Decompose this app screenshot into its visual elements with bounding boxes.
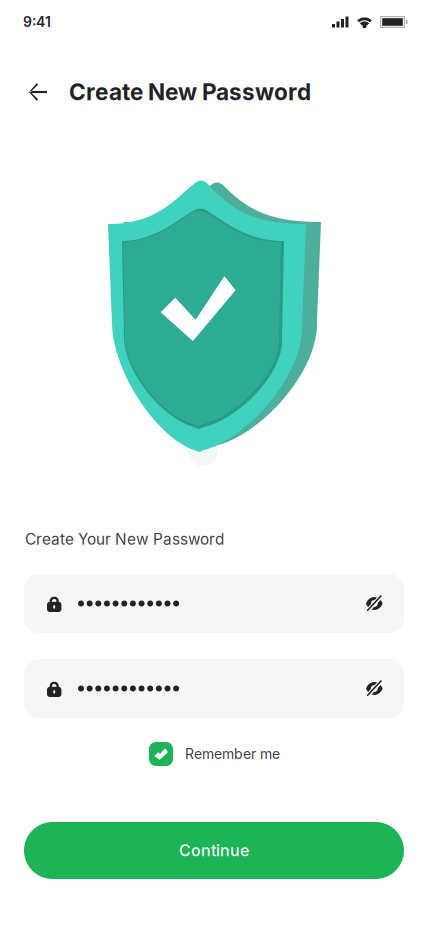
staticText: Remember me [185,745,280,762]
button[interactable] [24,659,404,718]
staticText: Continue [179,841,249,860]
staticText: 9:41 [23,13,51,30]
button[interactable]: Back [19,73,57,111]
button[interactable]: Continue [24,822,404,879]
staticText: Create New Password [69,78,311,106]
button[interactable]: Remember me [149,742,280,766]
button[interactable] [24,574,404,633]
staticText: Create Your New Password [25,530,224,549]
